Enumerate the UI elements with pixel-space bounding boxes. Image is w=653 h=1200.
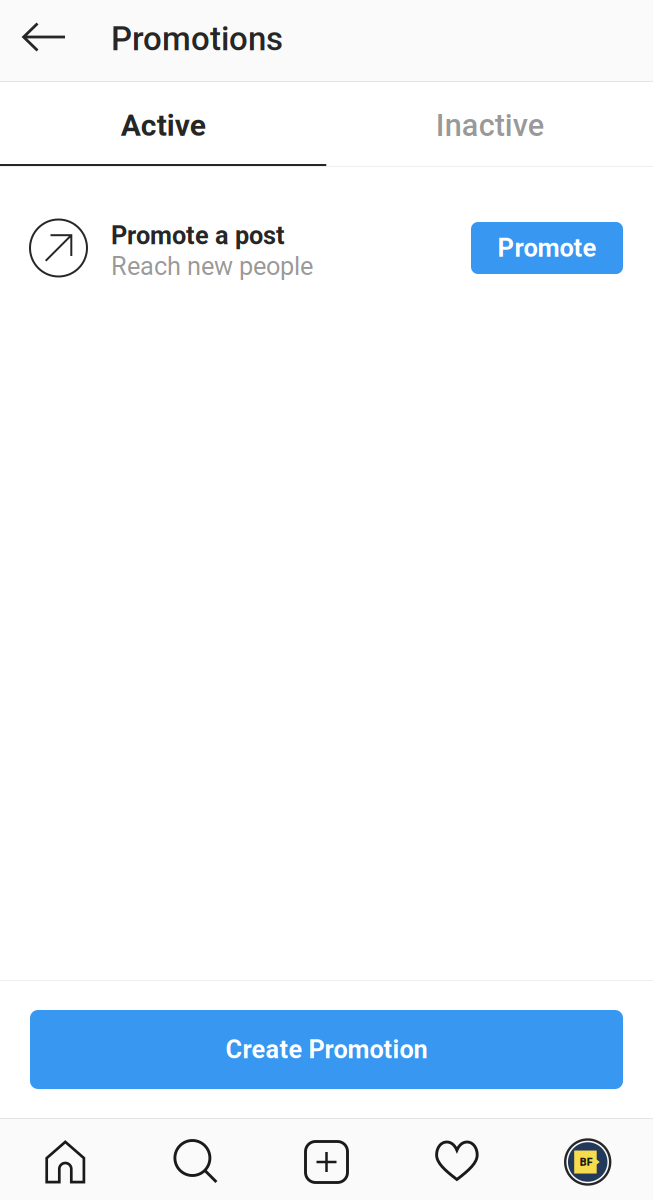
staticText: BF: [580, 1156, 593, 1168]
staticText: Promote: [497, 233, 596, 263]
staticText: Promotions: [111, 20, 283, 58]
button[interactable]: Search: [131, 1124, 261, 1200]
button[interactable]: Create Promotion: [30, 1010, 623, 1089]
button[interactable]: Profile: [522, 1124, 653, 1200]
button[interactable]: Activity: [392, 1124, 522, 1200]
staticText: Inactive: [436, 107, 544, 143]
button[interactable]: Inactive: [326, 82, 653, 167]
button[interactable]: Home: [0, 1124, 131, 1200]
staticText: Reach new people: [111, 251, 313, 281]
staticText: Promote a post: [111, 221, 285, 250]
staticText: Create Promotion: [225, 1035, 427, 1064]
button[interactable]: Create: [261, 1124, 392, 1200]
staticText: Active: [121, 108, 206, 143]
button[interactable]: Active: [0, 82, 326, 167]
button[interactable]: Promote a post: [0, 167, 653, 304]
button[interactable]: Back: [11, 0, 77, 74]
